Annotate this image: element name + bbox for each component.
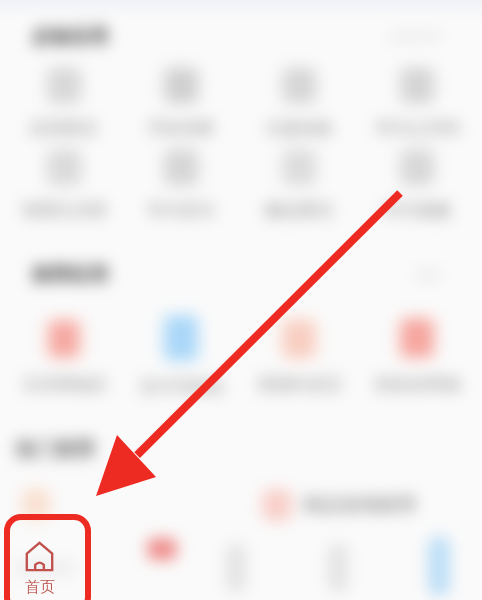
staticText: 畅连通话 <box>265 200 333 221</box>
staticText: 智慧生活馆 <box>22 200 107 221</box>
staticText: 应用商店 <box>30 118 98 139</box>
staticText: 华为视频 <box>383 200 451 221</box>
button[interactable]: 拼多多商城 <box>362 314 472 395</box>
button[interactable]: 应用商店 <box>9 65 119 139</box>
staticText: 华为云空间 <box>375 118 460 139</box>
staticText: 主题风格 <box>265 118 333 139</box>
button[interactable]: 主题风格 <box>244 65 354 139</box>
button[interactable]: 手机管家 <box>126 65 236 139</box>
staticText: 支付宝钱包 <box>139 376 224 397</box>
button[interactable]: 华为云空间 <box>362 65 472 139</box>
staticText: 手机管家 <box>147 118 215 139</box>
staticText: 热门推荐 <box>15 437 95 462</box>
button[interactable]: 支付宝钱包 <box>126 312 236 397</box>
staticText: 华为音乐 <box>147 200 215 221</box>
staticText: 首页 <box>24 578 56 597</box>
button[interactable]: 华为视频 <box>362 147 472 221</box>
button[interactable]: 首页 <box>4 514 91 600</box>
button[interactable]: 智慧生活馆 <box>9 147 119 221</box>
button[interactable]: 美团外卖店 <box>244 316 354 395</box>
staticText: 京东商城店 <box>22 374 107 395</box>
button[interactable]: 华为音乐 <box>126 147 236 221</box>
staticText: 美团外卖店 <box>257 374 342 395</box>
staticText: 拼多多商城 <box>375 374 460 395</box>
button[interactable]: 畅连通话 <box>244 147 354 221</box>
button[interactable]: 京东商城店 <box>9 316 119 395</box>
staticText: 必备应用 <box>32 25 108 49</box>
staticText: 精品游戏推荐 <box>303 493 417 517</box>
staticText: 推荐应用 <box>32 263 108 287</box>
